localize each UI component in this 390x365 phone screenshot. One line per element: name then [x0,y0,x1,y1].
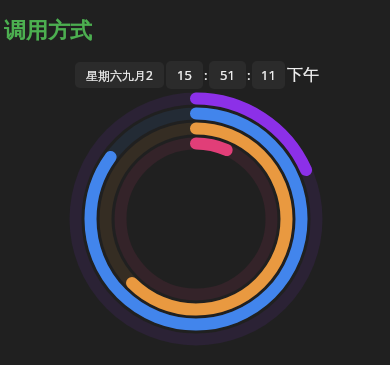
button[interactable]: 调用方式 [4,17,92,45]
staticText: 15 [177,66,192,84]
button[interactable]: 下午 [287,65,319,85]
button[interactable]: 星期六九月2 [75,62,164,88]
button[interactable]: 51 [209,61,246,89]
button[interactable]: 11 [252,61,285,89]
staticText: : [247,66,251,84]
staticText: : [204,66,208,84]
staticText: 星期六九月2 [86,67,153,83]
staticText: 11 [261,66,276,84]
staticText: 51 [220,66,235,84]
other: Clock rings: day, hour, minute, second [0,0,390,365]
button[interactable]: 15 [166,61,203,89]
